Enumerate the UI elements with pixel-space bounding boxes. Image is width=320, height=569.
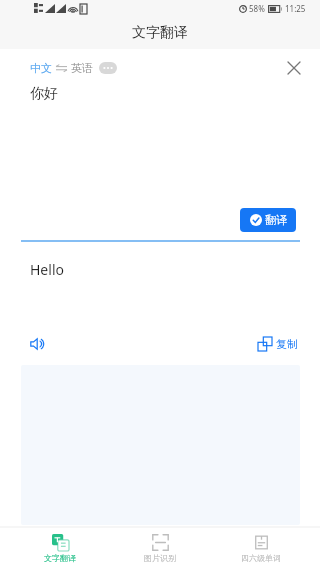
staticText: 中文 bbox=[30, 61, 52, 75]
button[interactable]: Clear bbox=[280, 57, 308, 79]
staticText: 58% bbox=[249, 3, 265, 14]
staticText: Hello bbox=[30, 260, 64, 279]
staticText: 四六级单词 bbox=[241, 553, 281, 563]
staticText: 你好 bbox=[30, 85, 58, 103]
staticText: 复制 bbox=[276, 337, 298, 351]
button[interactable]: 翻译 bbox=[240, 208, 296, 232]
staticText: 图片识别 bbox=[144, 553, 176, 563]
staticText: 11:25 bbox=[285, 3, 306, 14]
button[interactable]: 图片识别 bbox=[119, 528, 201, 569]
button[interactable]: 中文 bbox=[30, 61, 117, 75]
button[interactable]: Play pronunciation bbox=[26, 332, 50, 356]
staticText: 翻译 bbox=[265, 213, 287, 227]
button[interactable]: More languages bbox=[99, 62, 117, 74]
button[interactable]: 复制 bbox=[258, 337, 298, 351]
staticText: 文字翻译 bbox=[44, 553, 76, 563]
button[interactable]: 文字翻译 bbox=[19, 528, 101, 569]
staticText: 英语 bbox=[71, 61, 93, 75]
staticText: 文字翻译 bbox=[132, 24, 188, 42]
button[interactable]: 四六级单词 bbox=[220, 528, 302, 569]
